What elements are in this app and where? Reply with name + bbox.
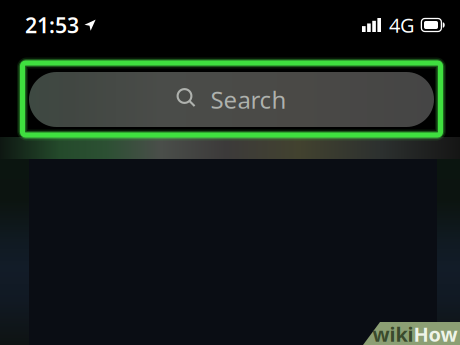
staticText: 21:53 [25, 11, 79, 39]
button[interactable]: Search [29, 72, 434, 127]
staticText: How [413, 321, 457, 345]
staticText: Search [210, 84, 286, 115]
staticText: 4G [389, 12, 415, 38]
staticText: wiki [372, 321, 413, 345]
